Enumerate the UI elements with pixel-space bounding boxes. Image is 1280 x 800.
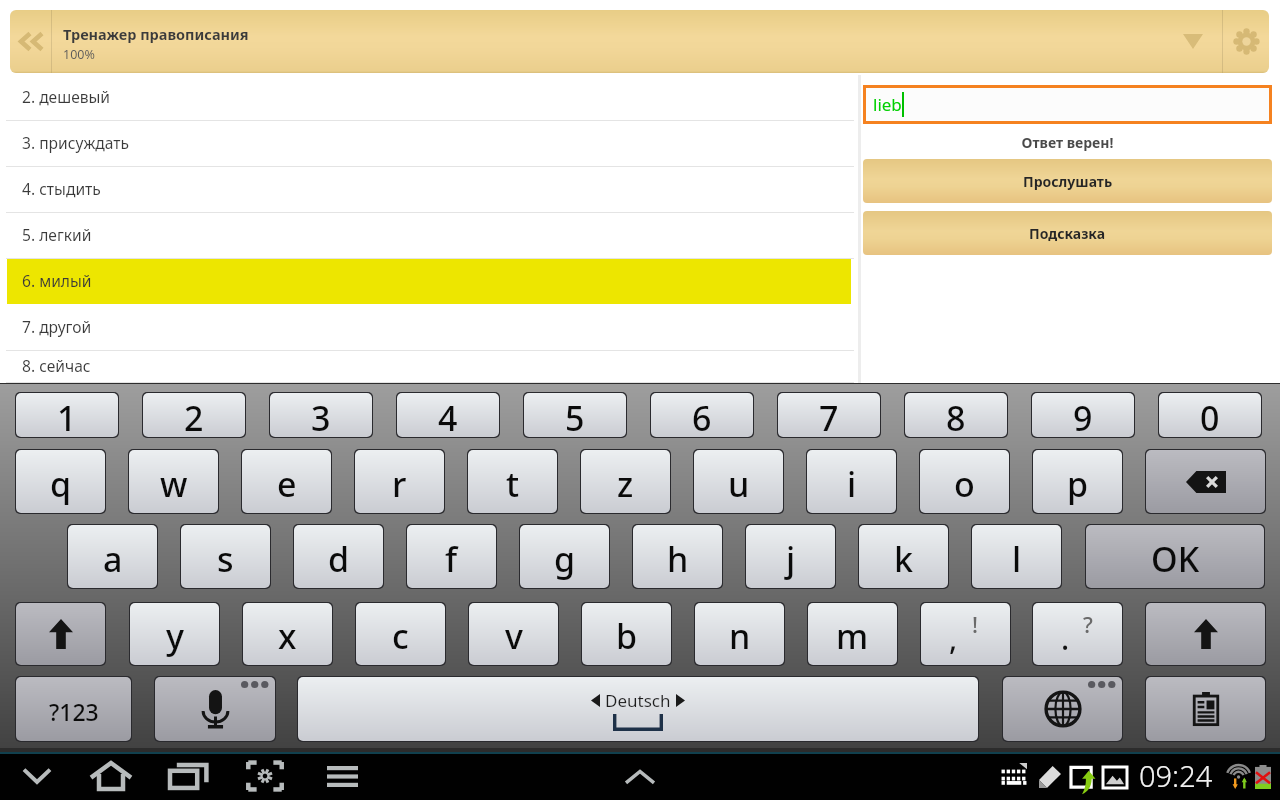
- button[interactable]: 8: [905, 393, 1007, 437]
- button[interactable]: 0: [1159, 393, 1261, 437]
- button[interactable]: 5. легкий: [0, 213, 860, 259]
- button[interactable]: 6: [651, 393, 753, 437]
- staticText: u: [728, 461, 750, 507]
- staticText: z: [617, 461, 634, 507]
- button[interactable]: 8. сейчас: [0, 351, 860, 383]
- button[interactable]: Recents: [164, 752, 212, 800]
- button[interactable]: Expand: [1173, 10, 1213, 73]
- button[interactable]: w: [129, 450, 218, 513]
- button[interactable]: h: [633, 525, 722, 588]
- button[interactable]: Deutsch: [298, 677, 978, 741]
- button[interactable]: 1: [16, 393, 118, 437]
- button[interactable]: r: [355, 450, 444, 513]
- button[interactable]: Подсказка: [863, 211, 1272, 255]
- button[interactable]: g: [520, 525, 609, 588]
- button[interactable]: Edit: [1026, 752, 1074, 800]
- staticText: n: [729, 613, 751, 659]
- button[interactable]: 6. милый: [0, 259, 860, 305]
- button[interactable]: Cast screen: [1059, 752, 1107, 800]
- button[interactable]: p: [1033, 450, 1122, 513]
- staticText: Прослушать: [1023, 172, 1113, 191]
- staticText: 9: [1073, 395, 1093, 437]
- button[interactable]: Тренажер правописания: [52, 10, 1173, 73]
- button[interactable]: Screenshot image: [1091, 752, 1139, 800]
- button[interactable]: a: [68, 525, 157, 588]
- button[interactable]: m: [808, 603, 897, 665]
- button[interactable]: e: [242, 450, 331, 513]
- button[interactable]: d: [294, 525, 383, 588]
- button[interactable]: ?123: [16, 677, 131, 741]
- button[interactable]: 4: [397, 393, 499, 437]
- button[interactable]: Home: [87, 752, 135, 800]
- button[interactable]: x: [243, 603, 332, 665]
- button[interactable]: Backspace: [1146, 450, 1265, 513]
- staticText: 4. стыдить: [22, 178, 101, 199]
- button[interactable]: Прослушать: [863, 159, 1272, 203]
- button[interactable]: n: [695, 603, 784, 665]
- button[interactable]: 7. другой: [0, 305, 860, 351]
- staticText: Тренажер правописания: [63, 24, 249, 44]
- button[interactable]: 4. стыдить: [0, 167, 860, 213]
- button[interactable]: y: [130, 603, 219, 665]
- button[interactable]: Clipboard: [1146, 677, 1265, 741]
- staticText: 100%: [63, 46, 95, 63]
- button[interactable]: Back: [13, 752, 61, 800]
- button[interactable]: Screenshot: [241, 752, 289, 800]
- button[interactable]: lieb: [866, 88, 1269, 121]
- staticText: 5: [565, 395, 585, 437]
- button[interactable]: Battery: [1239, 752, 1280, 800]
- staticText: ,: [949, 618, 958, 659]
- button[interactable]: Settings: [1223, 10, 1269, 73]
- staticText: 7. другой: [22, 316, 92, 337]
- button[interactable]: Menu: [318, 752, 366, 800]
- button[interactable]: 3. присуждать: [0, 121, 860, 167]
- staticText: 4: [438, 395, 458, 437]
- staticText: .: [1061, 618, 1070, 659]
- button[interactable]: Shift: [1146, 603, 1265, 665]
- button[interactable]: o: [920, 450, 1009, 513]
- button[interactable]: OK: [1086, 525, 1264, 588]
- button[interactable]: c: [356, 603, 445, 665]
- staticText: ?: [1083, 609, 1093, 639]
- staticText: k: [894, 536, 914, 582]
- button[interactable]: 2. дешевый: [0, 75, 860, 121]
- button[interactable]: q: [16, 450, 105, 513]
- button[interactable]: Voice input: [155, 677, 275, 741]
- staticText: l: [1012, 536, 1022, 582]
- button[interactable]: i: [807, 450, 896, 513]
- button[interactable]: ,: [921, 603, 1010, 665]
- button[interactable]: 3: [270, 393, 372, 437]
- button[interactable]: Show keyboard: [616, 752, 664, 800]
- button[interactable]: Keyboard: [990, 752, 1038, 800]
- staticText: g: [554, 536, 576, 582]
- button[interactable]: Back: [10, 10, 51, 73]
- button[interactable]: b: [582, 603, 671, 665]
- button[interactable]: s: [181, 525, 270, 588]
- button[interactable]: k: [859, 525, 948, 588]
- button[interactable]: Shift: [16, 603, 105, 665]
- staticText: b: [616, 613, 638, 659]
- button[interactable]: u: [694, 450, 783, 513]
- button[interactable]: v: [469, 603, 558, 665]
- button[interactable]: Wi-Fi: [1216, 752, 1264, 800]
- staticText: m: [836, 613, 869, 659]
- button[interactable]: 2: [143, 393, 245, 437]
- button[interactable]: l: [972, 525, 1061, 588]
- staticText: 7: [819, 395, 839, 437]
- button[interactable]: 5: [524, 393, 626, 437]
- button[interactable]: j: [746, 525, 835, 588]
- staticText: 3. присуждать: [22, 132, 129, 153]
- staticText: d: [328, 536, 350, 582]
- button[interactable]: z: [581, 450, 670, 513]
- button[interactable]: 9: [1032, 393, 1134, 437]
- staticText: Deutsch: [605, 689, 671, 712]
- button[interactable]: 7: [778, 393, 880, 437]
- staticText: s: [217, 536, 234, 582]
- button[interactable]: f: [407, 525, 496, 588]
- button[interactable]: Change language: [1003, 677, 1122, 741]
- button[interactable]: .: [1033, 603, 1122, 665]
- staticText: 8. сейчас: [22, 355, 91, 376]
- staticText: x: [278, 613, 297, 659]
- staticText: r: [392, 461, 407, 507]
- button[interactable]: t: [468, 450, 557, 513]
